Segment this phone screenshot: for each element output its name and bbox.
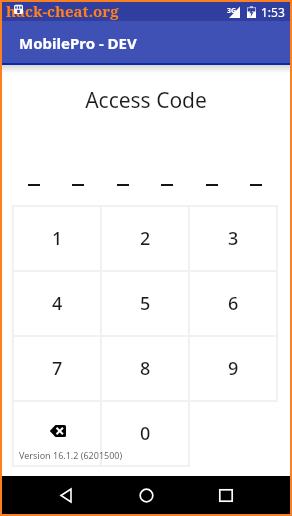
button[interactable]: 4 xyxy=(13,271,101,336)
staticText: Access Code xyxy=(85,86,207,115)
button[interactable]: 0 xyxy=(101,401,189,466)
staticText: 5 xyxy=(140,291,151,316)
staticText: 1 xyxy=(52,226,63,251)
staticText: MobilePro - DEV xyxy=(19,33,137,53)
staticText: 7 xyxy=(52,356,63,381)
button[interactable]: Back xyxy=(44,476,88,514)
staticText: 9 xyxy=(228,356,239,381)
button[interactable]: 7 xyxy=(13,336,101,401)
staticText: 0 xyxy=(140,421,151,446)
button[interactable]: 5 xyxy=(101,271,189,336)
staticText: 3G xyxy=(227,6,237,16)
button[interactable]: 9 xyxy=(189,336,277,401)
staticText: 6 xyxy=(228,291,239,316)
staticText: 8 xyxy=(140,356,151,381)
button[interactable]: 3 xyxy=(189,206,277,271)
staticText: Version 16.1.2 (6201500) xyxy=(19,449,123,461)
other: Backspace xyxy=(49,425,66,437)
staticText: 4 xyxy=(52,291,63,316)
button[interactable]: 8 xyxy=(101,336,189,401)
staticText: 2 xyxy=(140,226,151,251)
button[interactable]: 6 xyxy=(189,271,277,336)
button[interactable]: Backspace xyxy=(13,401,101,466)
staticText: 3 xyxy=(228,226,239,251)
button[interactable]: Home xyxy=(124,476,168,514)
button[interactable]: 2 xyxy=(101,206,189,271)
staticText: hack-cheat.org xyxy=(6,1,119,21)
button[interactable]: 1 xyxy=(13,206,101,271)
button[interactable]: Recents xyxy=(204,476,248,514)
staticText: 1:53 xyxy=(261,4,285,20)
